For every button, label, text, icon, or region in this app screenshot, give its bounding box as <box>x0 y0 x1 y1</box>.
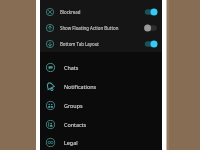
staticText: Legal <box>64 139 78 146</box>
staticText: Blockread <box>60 9 144 15</box>
button[interactable]: Block <box>40 4 162 20</box>
other: Contacts <box>46 120 55 129</box>
button[interactable]: Groups <box>40 96 162 115</box>
other: Block <box>46 8 54 16</box>
button[interactable]: Contacts <box>40 115 162 134</box>
button[interactable]: Floating action button <box>40 20 162 36</box>
button[interactable]: Blockread on <box>144 8 158 16</box>
button[interactable]: Bottom tab layout <box>40 36 162 52</box>
staticText: Groups <box>64 102 83 109</box>
staticText: Chats <box>64 64 79 71</box>
other: Groups <box>46 101 55 110</box>
staticText: Bottom Tab Layout <box>60 41 144 47</box>
other: Chats <box>46 63 55 72</box>
other: Notifications <box>46 82 55 91</box>
button[interactable]: Chats <box>40 58 162 77</box>
other: Floating action button <box>46 24 54 32</box>
button[interactable]: Show Floating Action Button off <box>144 24 158 32</box>
button[interactable]: Notifications <box>40 77 162 96</box>
button[interactable]: Bottom Tab Layout on <box>144 40 158 48</box>
other: Legal <box>46 138 55 147</box>
staticText: Notifications <box>64 83 97 90</box>
staticText: Show Floating Action Button <box>60 25 144 31</box>
button[interactable]: Legal <box>40 134 162 150</box>
staticText: Contacts <box>64 121 87 128</box>
other: Bottom tab layout <box>46 40 54 48</box>
